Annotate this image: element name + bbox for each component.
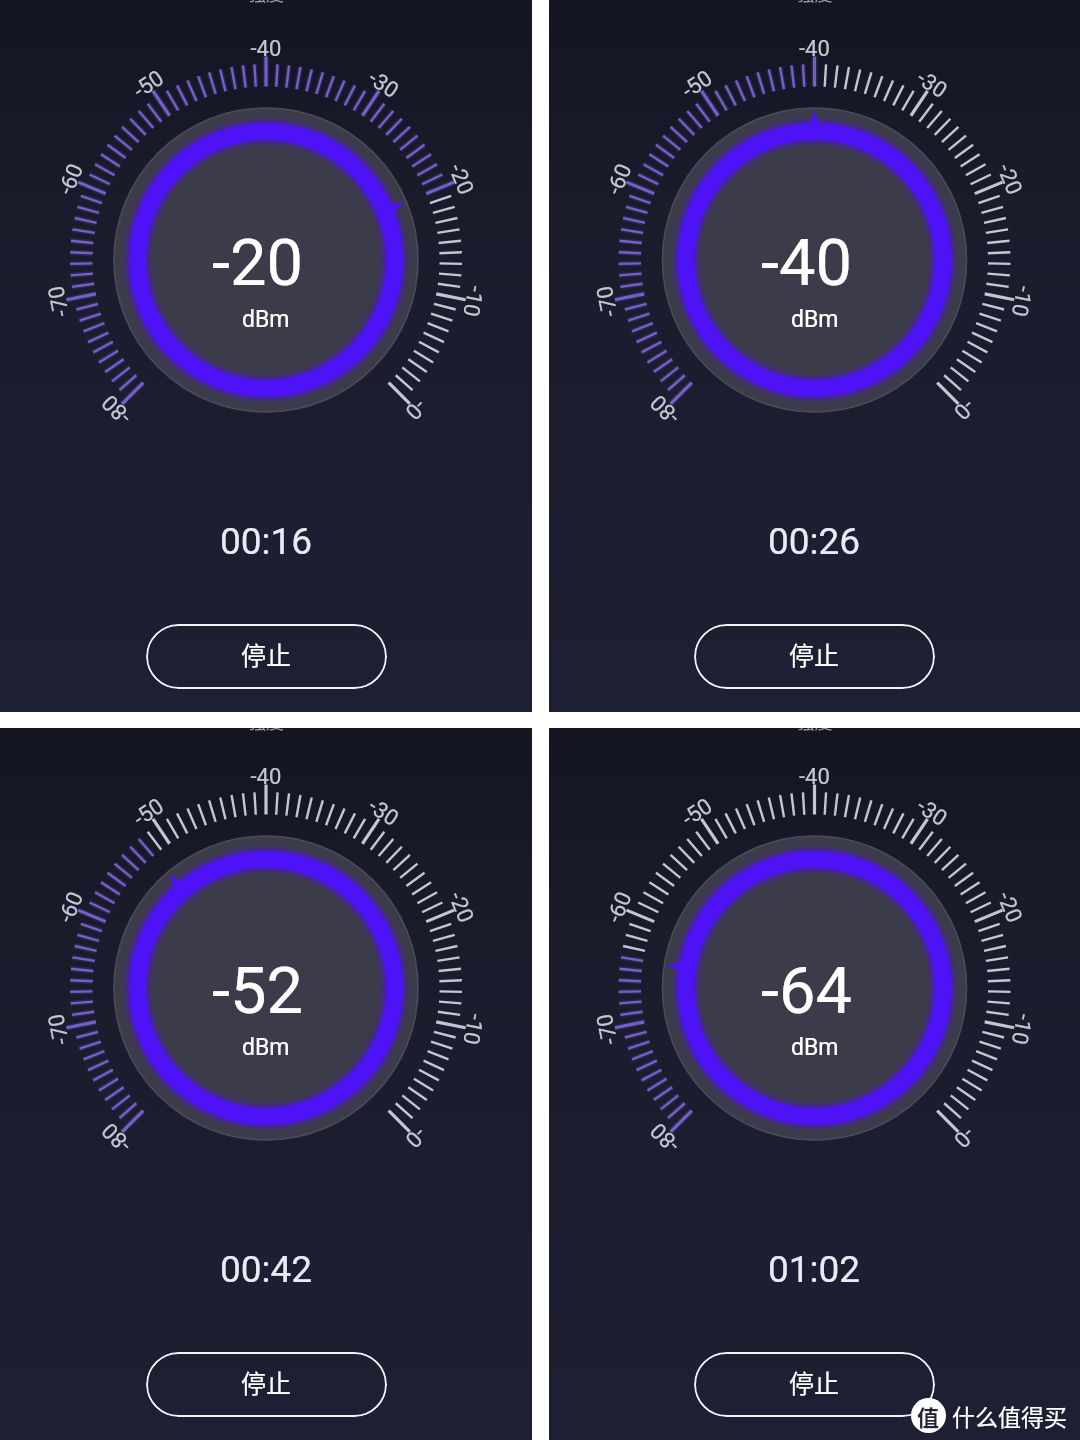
staticText: -64 [761,953,853,1029]
button[interactable]: 停止 [146,1352,387,1417]
staticText: 停止 [241,636,292,672]
staticText: 01:02 [768,1248,861,1291]
staticText: -40 [761,225,853,301]
staticText: dBm [791,1034,839,1061]
button[interactable]: 停止 [694,624,935,689]
staticText: dBm [242,1034,290,1061]
staticText: 停止 [789,636,840,672]
staticText: 00:16 [220,520,313,563]
button[interactable]: Signal strength dial [113,107,419,413]
button[interactable]: 停止 [146,624,387,689]
button[interactable]: Signal strength dial [113,835,419,1141]
staticText: 00:42 [220,1248,313,1291]
button[interactable]: Signal strength dial [662,107,968,413]
staticText: -52 [212,953,304,1029]
staticText: -20 [212,225,304,301]
staticText: 什么值得买 [952,1399,1067,1432]
staticText: dBm [242,306,290,333]
staticText: 00:26 [768,520,861,563]
button[interactable]: Signal strength dial [662,835,968,1141]
staticText: dBm [791,306,839,333]
staticText: 停止 [789,1364,840,1400]
staticText: 值 [917,1400,940,1432]
staticText: 停止 [241,1364,292,1400]
button[interactable]: 停止 [694,1352,935,1417]
